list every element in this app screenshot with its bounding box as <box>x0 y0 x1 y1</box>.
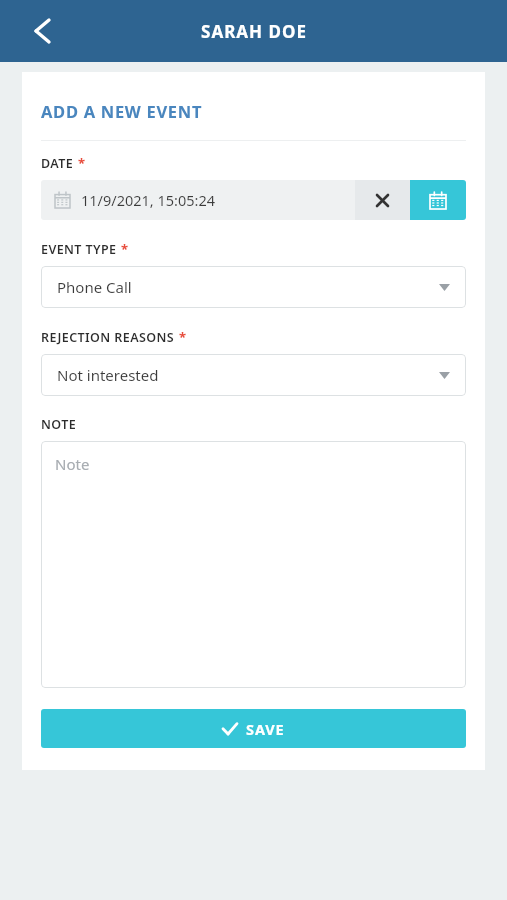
button[interactable]: Phone Call <box>41 266 466 308</box>
staticText: * <box>121 240 129 258</box>
staticText: DATE <box>41 155 74 172</box>
staticText: SARAH DOE <box>201 20 307 43</box>
staticText: 11/9/2021, 15:05:24 <box>81 190 216 210</box>
staticText: REJECTION REASONS <box>41 329 175 346</box>
staticText: SAVE <box>246 719 285 739</box>
staticText: Not interested <box>57 365 159 385</box>
staticText: EVENT TYPE <box>41 241 117 258</box>
staticText: NOTE <box>41 416 77 433</box>
button[interactable]: SAVE <box>41 709 466 748</box>
button[interactable]: Note <box>41 441 466 688</box>
button[interactable]: Back <box>18 7 66 55</box>
button[interactable]: Pick date <box>410 180 466 220</box>
button[interactable]: Not interested <box>41 354 466 396</box>
button[interactable]: Clear date <box>355 180 410 220</box>
staticText: * <box>78 154 86 172</box>
staticText: Phone Call <box>57 277 132 297</box>
staticText: ADD A NEW EVENT <box>41 100 203 122</box>
button[interactable]: 11/9/2021, 15:05:24 <box>41 180 355 220</box>
staticText: * <box>179 328 187 346</box>
staticText: Note <box>55 454 90 474</box>
